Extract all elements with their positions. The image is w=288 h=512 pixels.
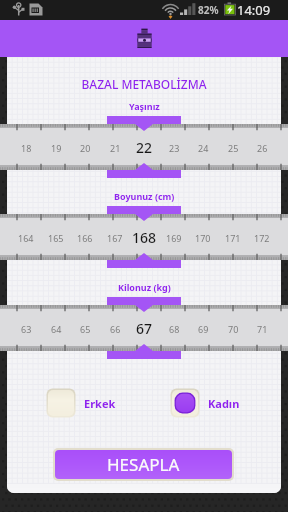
staticText: 19 <box>51 142 62 154</box>
staticText: 64 <box>51 323 62 335</box>
staticText: HESAPLA <box>107 453 180 476</box>
staticText: 23 <box>169 142 180 154</box>
staticText: 14:09 <box>237 1 271 19</box>
staticText: 68 <box>169 323 180 335</box>
staticText: 69 <box>198 323 209 335</box>
staticText: 164 <box>18 232 34 244</box>
staticText: Boyunuz (cm) <box>114 190 175 202</box>
staticText: 70 <box>228 323 239 335</box>
button[interactable]: 164 <box>0 214 288 260</box>
staticText: 21 <box>110 142 121 154</box>
staticText: 22 <box>136 138 153 157</box>
staticText: 24 <box>198 142 209 154</box>
staticText: Kadın <box>208 396 240 411</box>
button[interactable]: 63 <box>0 305 288 351</box>
staticText: 65 <box>80 323 91 335</box>
staticText: 18 <box>21 142 32 154</box>
button[interactable]: Erkek <box>46 388 116 418</box>
staticText: 20 <box>80 142 91 154</box>
staticText: Erkek <box>84 396 116 411</box>
staticText: 170 <box>195 232 211 244</box>
staticText: 167 <box>107 232 123 244</box>
button[interactable]: Bazal Metabolizma <box>0 20 288 57</box>
staticText: 26 <box>257 142 268 154</box>
staticText: 166 <box>77 232 93 244</box>
staticText: 168 <box>132 228 157 247</box>
staticText: 71 <box>257 323 268 335</box>
staticText: 66 <box>110 323 121 335</box>
button[interactable]: 18 <box>0 124 288 170</box>
staticText: 25 <box>228 142 239 154</box>
staticText: Yaşınız <box>129 100 160 112</box>
staticText: BAZAL METABOLİZMA <box>81 76 207 92</box>
staticText: 82% <box>198 3 219 17</box>
button[interactable]: HESAPLA <box>55 450 232 479</box>
staticText: 67 <box>136 319 153 338</box>
staticText: 171 <box>225 232 241 244</box>
button[interactable]: Kadın <box>170 388 240 418</box>
staticText: 165 <box>48 232 64 244</box>
staticText: 172 <box>254 232 270 244</box>
staticText: Kilonuz (kg) <box>118 281 171 293</box>
staticText: 63 <box>21 323 32 335</box>
staticText: 169 <box>166 232 182 244</box>
